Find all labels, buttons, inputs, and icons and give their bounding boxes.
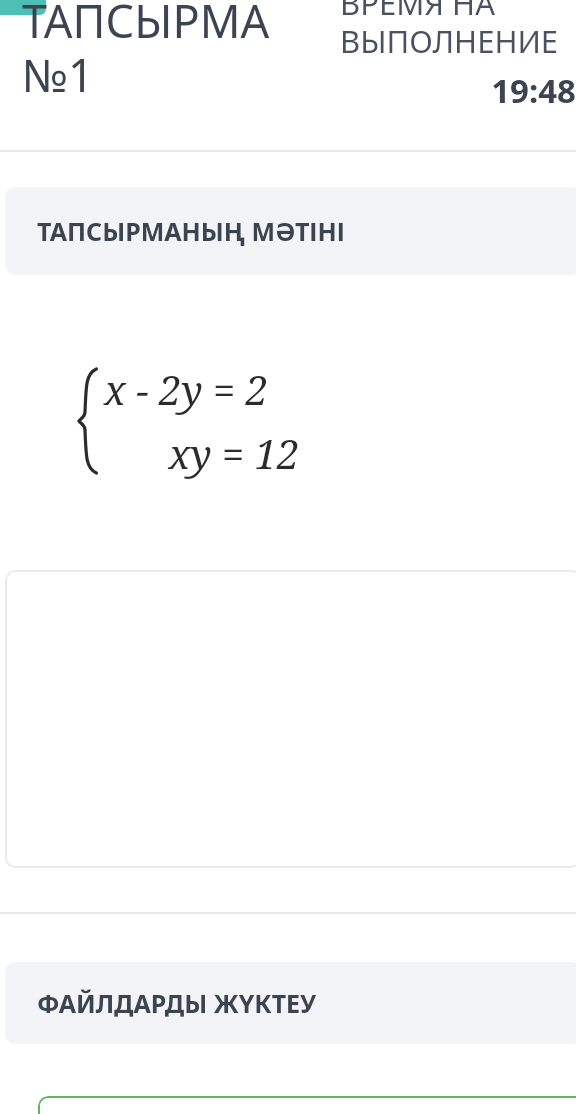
staticText: x − 2y = 2 [104,362,364,416]
staticText: ВРЕМЯ НА ВЫПОЛНЕНИЕ [340,0,576,62]
button[interactable]: ТАПСЫРМАНЫҢ МӘТІНІ [5,187,576,275]
staticText: ТАПСЫРМА №1 [22,0,352,106]
staticText: 19:48 [340,68,576,113]
button[interactable]: Tab indicator [0,0,46,15]
button[interactable]: ФАЙЛДАРДЫ ЖҮКТЕУ [5,962,576,1044]
button[interactable]: Upload files [38,1096,576,1114]
staticText: ТАПСЫРМАНЫҢ МӘТІНІ [37,214,576,248]
staticText: xy = 12 [104,426,364,480]
staticText: ФАЙЛДАРДЫ ЖҮКТЕУ [37,986,576,1020]
